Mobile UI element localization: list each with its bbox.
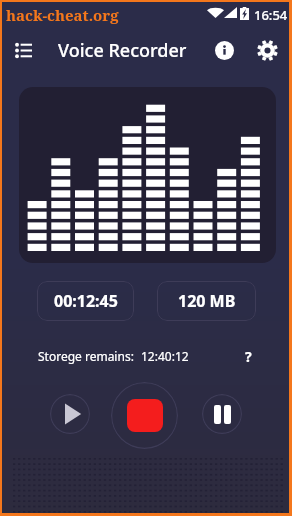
staticText: 16:54 xyxy=(254,6,288,24)
button[interactable]: Play xyxy=(50,394,90,434)
button[interactable]: Help xyxy=(235,343,261,369)
staticText: 12:40:12 xyxy=(141,348,189,364)
button[interactable]: 00:12:45 xyxy=(37,281,134,321)
button[interactable]: Record xyxy=(111,382,178,449)
button[interactable]: Pause xyxy=(202,394,242,434)
button[interactable]: Info xyxy=(203,29,245,71)
button[interactable]: Recordings list xyxy=(2,29,44,71)
button[interactable]: 120 MB xyxy=(157,281,256,321)
staticText: ? xyxy=(245,347,252,366)
staticText: 00:12:45 xyxy=(54,290,118,312)
staticText: Storege remains: xyxy=(38,348,134,364)
button[interactable]: Settings xyxy=(245,28,289,72)
staticText: Voice Recorder xyxy=(58,38,187,63)
staticText: hack-cheat.org xyxy=(6,5,119,25)
staticText: 120 MB xyxy=(178,290,236,312)
